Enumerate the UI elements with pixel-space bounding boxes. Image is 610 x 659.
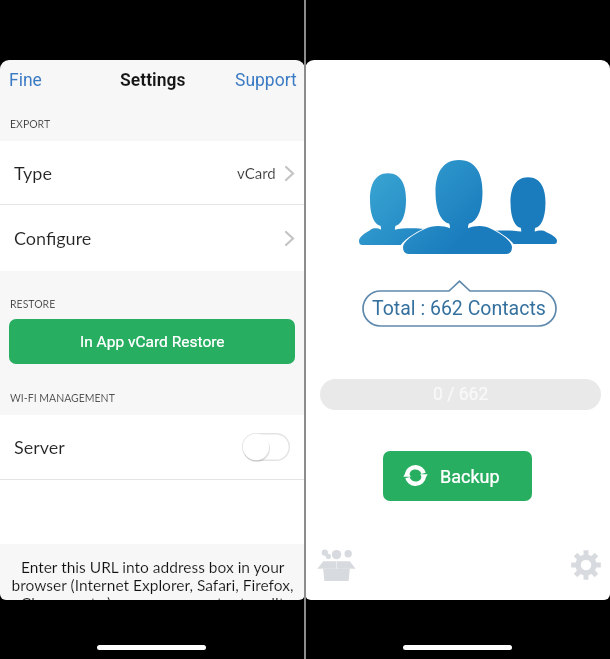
button[interactable]: Backup <box>383 451 532 501</box>
staticText: Fine <box>9 70 42 91</box>
staticText: Support <box>235 70 297 91</box>
button[interactable]: Support <box>227 64 305 97</box>
button[interactable]: Restore <box>312 545 360 585</box>
staticText: Configure <box>14 227 92 249</box>
button[interactable]: Configure <box>0 205 305 271</box>
staticText: 0 / 662 <box>433 384 489 405</box>
button[interactable]: Type <box>0 141 305 204</box>
button[interactable]: In App vCard Restore <box>9 319 295 364</box>
staticText: Backup <box>440 466 500 487</box>
staticText: Server <box>14 436 65 458</box>
staticText: RESTORE <box>10 298 56 311</box>
staticText: Type <box>14 162 52 184</box>
staticText: EXPORT <box>10 118 51 131</box>
button[interactable]: Fine <box>0 64 50 97</box>
button[interactable]: Settings <box>567 546 605 584</box>
button[interactable]: Server <box>0 415 305 479</box>
staticText: Enter this URL into address box in your … <box>8 558 297 600</box>
staticText: Total : 662 Contacts <box>372 297 546 320</box>
staticText: In App vCard Restore <box>80 333 225 351</box>
staticText: Settings <box>120 70 186 91</box>
staticText: WI-FI MANAGEMENT <box>10 392 115 405</box>
staticText: vCard <box>237 164 276 182</box>
